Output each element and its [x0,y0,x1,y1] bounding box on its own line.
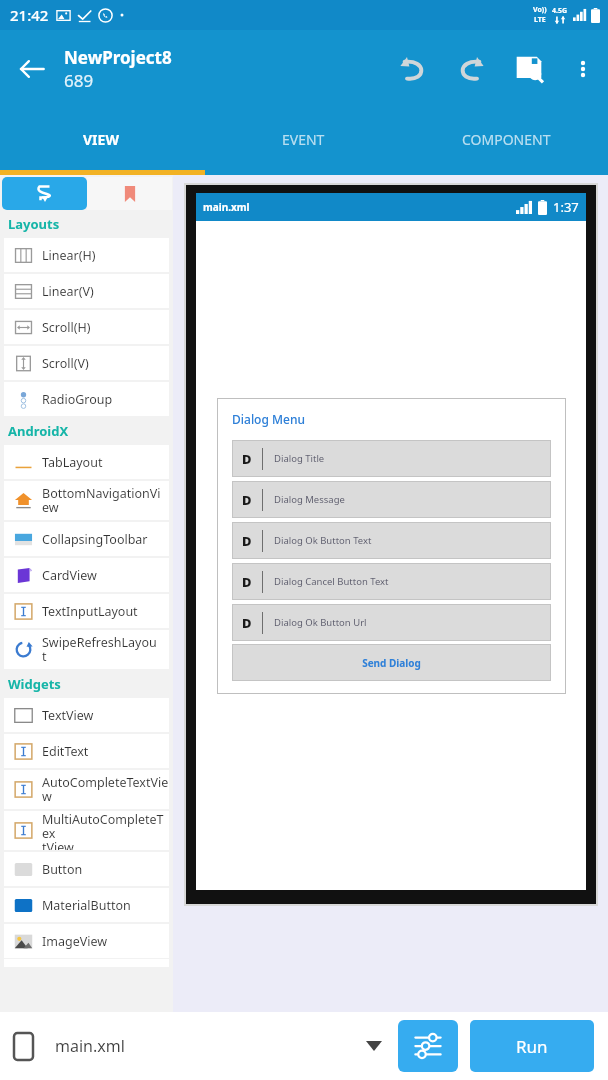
staticText: LTE [534,15,546,25]
button[interactable]: TextView [4,698,169,732]
button[interactable]: D [232,440,551,477]
staticText: CardView [42,567,97,584]
button[interactable]: Save [500,39,558,99]
staticText: Dialog Menu [232,411,305,427]
staticText: 1:37 [553,198,579,216]
button[interactable]: EditText [4,734,169,768]
staticText: Run [516,1035,548,1058]
staticText: 21:42 [10,5,49,25]
button[interactable]: D [232,563,551,600]
button[interactable]: CardView [4,558,169,592]
button[interactable]: AutoCompleteTextVie w [4,770,169,809]
button[interactable]: Back [0,37,64,101]
staticText: D [242,532,252,550]
button[interactable]: RadioGroup [4,382,169,416]
button[interactable]: EVENT [202,108,405,170]
staticText: Dialog Ok Button Text [274,534,372,547]
staticText: EVENT [282,130,325,149]
staticText: Scroll(V) [42,355,89,372]
button[interactable]: Scroll(H) [4,310,169,344]
button[interactable]: Linear(V) [4,274,169,308]
staticText: ImageView [42,933,108,950]
staticText: VIEW [83,130,119,149]
staticText: Dialog Cancel Button Text [274,575,389,588]
staticText: Dialog Message [274,493,345,506]
staticText: Button [42,861,83,878]
staticText: Linear(H) [42,247,96,264]
button[interactable]: TextInputLayout [4,594,169,628]
button[interactable]: COMPONENT [405,108,608,170]
staticText: main.xml [203,200,250,214]
staticText: main.xml [55,1035,125,1057]
button[interactable]: D [232,481,551,518]
button[interactable]: MultiAutoCompleteTex tView [4,811,169,850]
button[interactable]: Settings [398,1020,458,1072]
button[interactable]: Widgets palette [2,177,87,210]
button[interactable]: Scroll(V) [4,346,169,380]
button[interactable]: Undo [384,39,442,99]
staticText: Dialog Ok Button Url [274,616,367,629]
button[interactable]: TabLayout [4,445,169,479]
staticText: NewProject8 [64,46,172,69]
staticText: CollapsingToolbar [42,531,148,548]
button[interactable]: VIEW [0,108,202,170]
staticText: D [242,491,252,509]
button[interactable]: ImageView [4,924,169,958]
staticText: Linear(V) [42,283,94,300]
button[interactable]: Run [470,1020,594,1072]
button[interactable]: D [232,604,551,641]
staticText: SwipeRefreshLayou t [42,634,157,665]
button[interactable]: SwipeRefreshLayou t [4,630,169,669]
staticText: MaterialButton [42,897,131,914]
staticText: Dialog Title [274,452,325,465]
staticText: RadioGroup [42,391,113,408]
button[interactable]: D [232,522,551,559]
button[interactable]: Send Dialog [232,644,551,681]
button[interactable]: Redo [442,39,500,99]
staticText: TabLayout [42,454,103,471]
button[interactable]: MaterialButton [4,888,169,922]
staticText: D [242,614,252,632]
staticText: Widgets [8,675,61,693]
staticText: EditText [42,743,89,760]
staticText: Scroll(H) [42,319,91,336]
staticText: Send Dialog [362,656,421,670]
button[interactable]: main.xml [14,1012,382,1080]
staticText: AndroidX [8,422,69,440]
staticText: COMPONENT [462,130,551,149]
staticText: AutoCompleteTextVie w [42,774,169,805]
staticText: Vo)) [533,5,547,15]
staticText: TextInputLayout [42,603,138,620]
button[interactable]: Favorites [87,177,172,210]
staticText: D [242,573,252,591]
staticText: 689 [64,69,94,92]
button[interactable]: Button [4,852,169,886]
staticText: D [242,450,252,468]
button[interactable]: More options [558,39,608,99]
staticText: MultiAutoCompleteTex tView [42,811,169,850]
staticText: Layouts [8,215,60,233]
staticText: 4.5G [552,6,568,16]
button[interactable]: Linear(H) [4,238,169,272]
staticText: TextView [42,707,94,724]
button[interactable]: CollapsingToolbar [4,522,169,556]
staticText: BottomNavigationVi ew [42,485,161,516]
button[interactable]: BottomNavigationVi ew [4,481,169,520]
